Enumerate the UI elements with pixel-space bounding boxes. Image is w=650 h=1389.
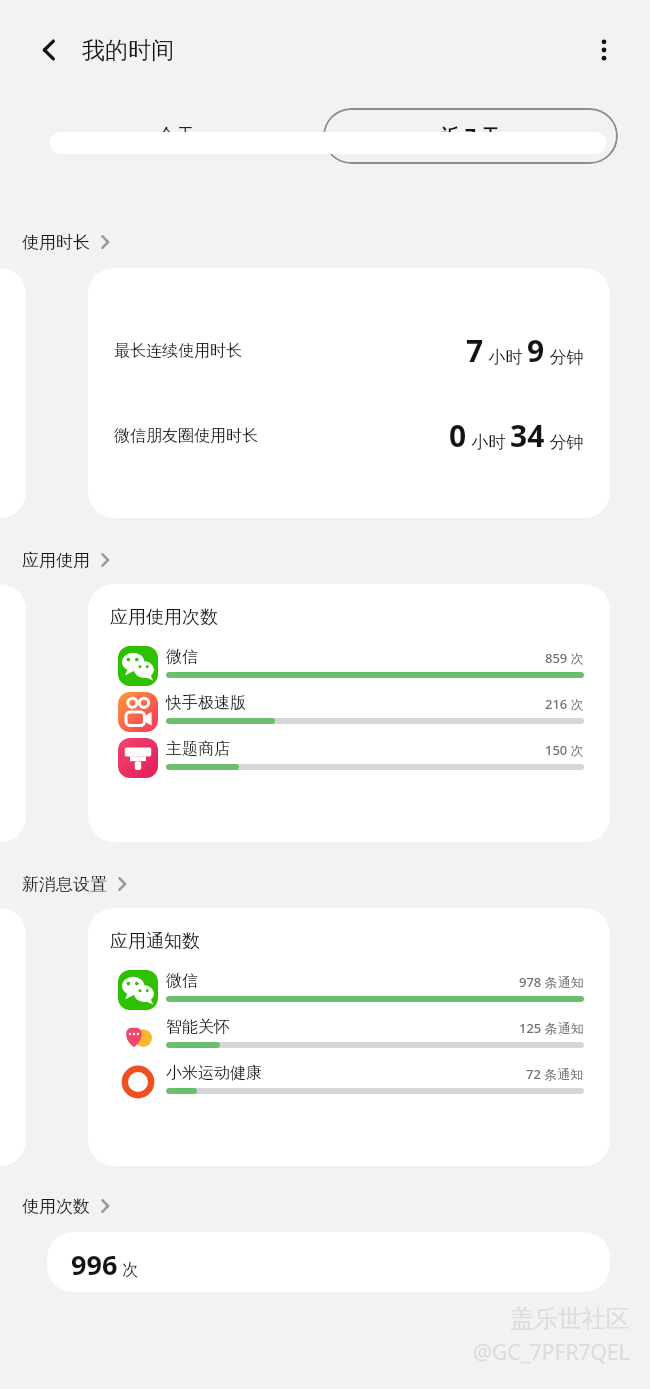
button[interactable]: 快手极速版 xyxy=(110,689,610,735)
staticText: 应用使用次数 xyxy=(110,606,218,629)
staticText: 应用通知数 xyxy=(110,930,200,953)
button[interactable]: 智能关怀 xyxy=(110,1013,610,1059)
staticText: 150 次 xyxy=(545,741,584,759)
staticText: 0 xyxy=(449,415,467,456)
button[interactable]: 小米运动健康 xyxy=(110,1059,610,1105)
button[interactable]: 主题商店 xyxy=(110,735,610,781)
button[interactable]: 新消息设置 xyxy=(0,864,650,904)
staticText: 盖乐世社区 xyxy=(510,1304,630,1334)
button[interactable]: 微信 xyxy=(110,643,610,689)
button[interactable]: 近 7 天 xyxy=(323,108,618,164)
staticText: 7 xyxy=(466,330,484,371)
staticText: 新消息设置 xyxy=(22,874,107,895)
staticText: 小米运动健康 xyxy=(166,1063,262,1083)
button[interactable]: 微信 xyxy=(110,967,610,1013)
staticText: 微信 xyxy=(166,647,198,667)
button[interactable]: 996 xyxy=(47,1232,610,1292)
button[interactable]: 使用次数 xyxy=(0,1186,650,1226)
staticText: 近 7 天 xyxy=(441,123,500,149)
button[interactable]: 最长连续使用时长 xyxy=(88,268,610,518)
staticText: 我的时间 xyxy=(82,36,174,65)
button[interactable]: More options xyxy=(580,26,628,74)
button[interactable]: 最长连续使用时长 xyxy=(114,330,584,371)
staticText: 小时 xyxy=(467,430,506,453)
staticText: 9 xyxy=(527,330,545,371)
staticText: 996 xyxy=(71,1246,118,1283)
staticText: 使用时长 xyxy=(22,232,90,253)
button[interactable]: 今天 xyxy=(28,108,323,164)
button[interactable]: Back xyxy=(26,26,74,74)
staticText: 859 次 xyxy=(545,649,584,667)
staticText: 小时 xyxy=(484,345,523,368)
staticText: 今天 xyxy=(157,124,195,148)
button[interactable]: 应用使用次数 xyxy=(88,584,610,842)
staticText: 微信朋友圈使用时长 xyxy=(114,426,258,446)
staticText: @GC_7PFR7QEL xyxy=(473,1338,630,1367)
staticText: 216 次 xyxy=(545,695,584,713)
staticText: 125 条通知 xyxy=(519,1019,584,1037)
staticText: 智能关怀 xyxy=(166,1017,230,1037)
button[interactable]: 使用时长 xyxy=(0,222,650,262)
staticText: 72 条通知 xyxy=(526,1065,584,1083)
staticText: 主题商店 xyxy=(166,739,230,759)
button[interactable]: 应用使用 xyxy=(0,540,650,580)
staticText: 应用使用 xyxy=(22,550,90,571)
button[interactable]: 微信朋友圈使用时长 xyxy=(114,415,584,456)
staticText: 使用次数 xyxy=(22,1196,90,1217)
button[interactable]: 应用通知数 xyxy=(88,908,610,1166)
staticText: 分钟 xyxy=(545,430,584,453)
staticText: 次 xyxy=(118,1258,139,1280)
staticText: 分钟 xyxy=(545,345,584,368)
staticText: 微信 xyxy=(166,971,198,991)
staticText: 34 xyxy=(510,415,545,456)
staticText: 快手极速版 xyxy=(166,693,246,713)
staticText: 最长连续使用时长 xyxy=(114,341,242,361)
staticText: 978 条通知 xyxy=(519,973,584,991)
